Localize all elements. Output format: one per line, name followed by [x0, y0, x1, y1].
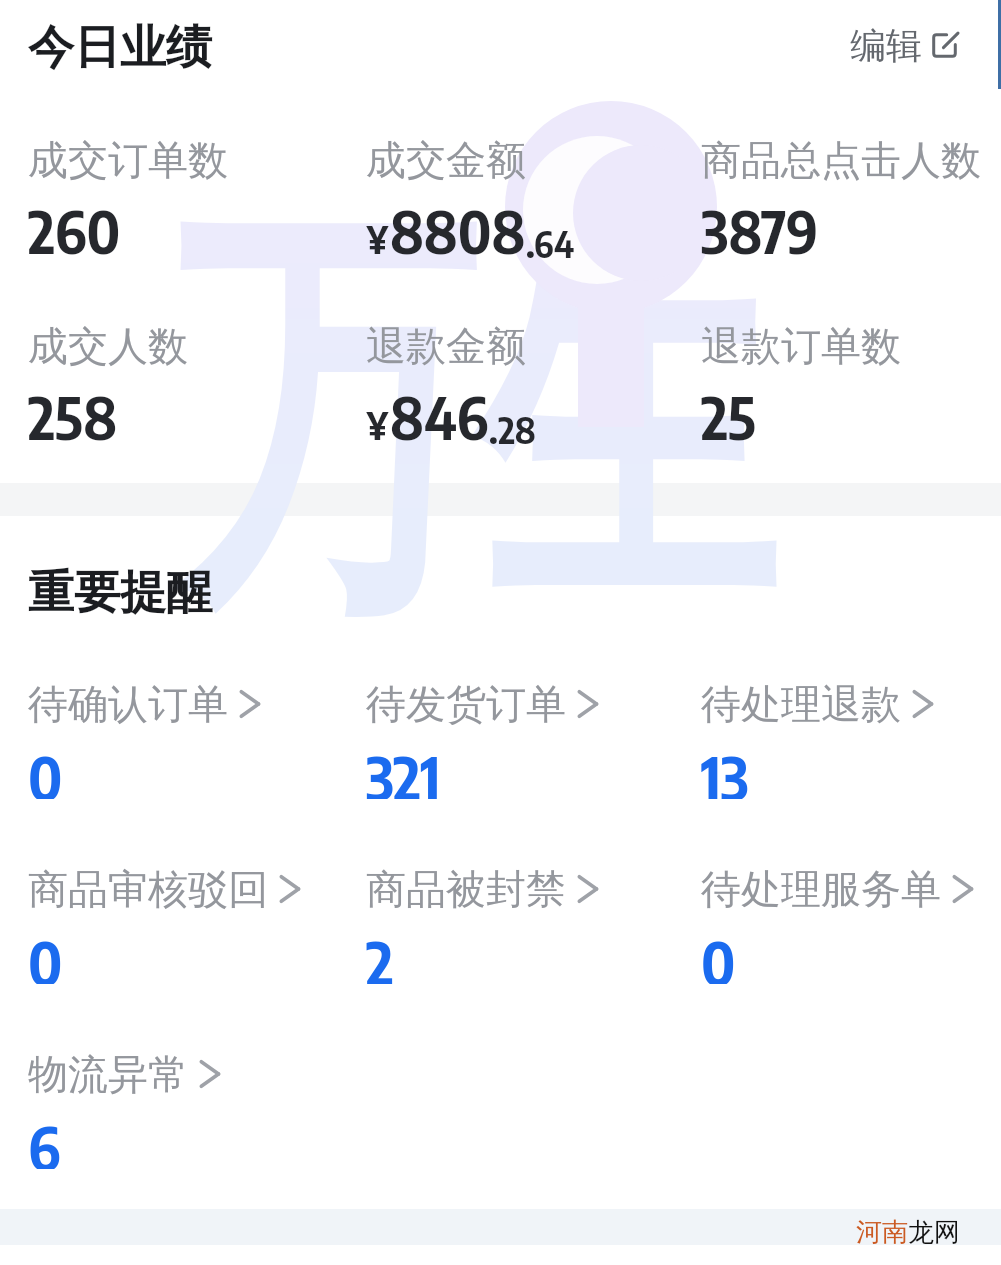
staticText: 万生: [176, 150, 776, 687]
button[interactable]: 待发货订单: [356, 671, 676, 799]
staticText: .28: [489, 407, 536, 452]
staticText: 321: [366, 740, 441, 799]
staticText: ¥: [366, 211, 389, 265]
staticText: 商品被封禁: [366, 864, 566, 914]
staticText: 待处理服务单: [701, 864, 941, 914]
staticText: 258: [28, 380, 118, 452]
staticText: 商品审核驳回: [28, 864, 268, 914]
staticText: 6: [28, 1110, 61, 1169]
staticText: 成交金额: [366, 135, 526, 185]
button[interactable]: 商品被封禁: [356, 856, 676, 984]
staticText: 13: [701, 740, 749, 799]
staticText: 重要提醒: [28, 564, 212, 622]
staticText: 今日业绩: [28, 19, 212, 77]
staticText: 3879: [701, 194, 819, 266]
staticText: 成交人数: [28, 321, 188, 371]
button[interactable]: 待处理退款: [691, 671, 1001, 799]
staticText: 河南: [856, 1216, 908, 1249]
staticText: 龙网: [908, 1216, 960, 1249]
staticText: 25: [701, 380, 756, 452]
staticText: 0: [28, 740, 63, 799]
staticText: 商品总点击人数: [701, 135, 981, 185]
staticText: 退款金额: [366, 321, 526, 371]
button[interactable]: 编辑: [844, 17, 964, 74]
button[interactable]: 待确认订单: [18, 671, 338, 799]
staticText: 8808: [390, 194, 526, 266]
staticText: 0: [28, 925, 63, 984]
staticText: 待发货订单: [366, 679, 566, 729]
staticText: 846: [390, 380, 489, 452]
button[interactable]: 物流异常: [18, 1041, 338, 1169]
button[interactable]: 商品审核驳回: [18, 856, 338, 984]
staticText: .64: [526, 221, 575, 266]
staticText: ¥: [366, 397, 389, 451]
staticText: 退款订单数: [701, 321, 901, 371]
staticText: 编辑: [850, 23, 922, 68]
button[interactable]: 待处理服务单: [691, 856, 1001, 984]
staticText: 260: [28, 194, 121, 266]
staticText: 待确认订单: [28, 679, 228, 729]
staticText: 0: [701, 925, 736, 984]
staticText: 成交订单数: [28, 135, 228, 185]
staticText: 待处理退款: [701, 679, 901, 729]
staticText: 物流异常: [28, 1049, 188, 1099]
other: Edit: [931, 32, 958, 59]
staticText: 2: [366, 925, 394, 984]
